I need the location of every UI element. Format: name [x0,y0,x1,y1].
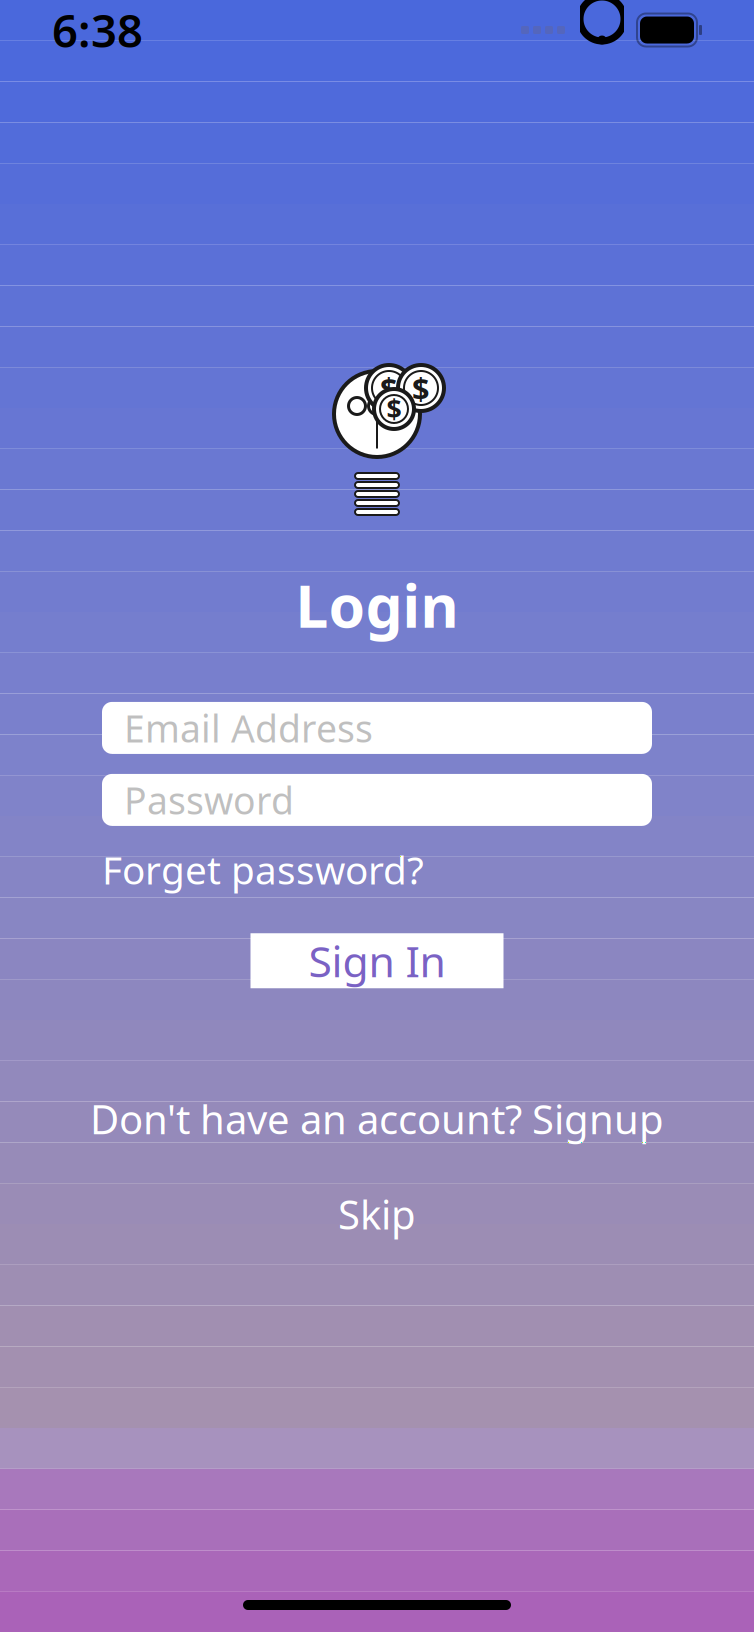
button[interactable]: Email Address [102,702,652,754]
staticText: Email Address [124,703,373,753]
staticText: $ [380,368,398,408]
staticText: $ [386,391,401,427]
staticText: Login [295,566,458,644]
button[interactable]: Password [102,774,652,826]
staticText: Don't have an account? Signup [90,1092,664,1145]
staticText: Password [124,775,294,825]
staticText: $ [412,368,430,408]
staticText: Skip [338,1187,416,1240]
staticText: Sign In [308,932,445,989]
button[interactable]: Forget password? [102,844,424,895]
button[interactable]: Don't have an account? Signup [70,1084,684,1153]
staticText: 6:38 [52,0,143,60]
button[interactable]: Sign In [250,933,503,988]
staticText: Forget password? [102,844,424,895]
button[interactable]: Skip [308,1179,446,1248]
